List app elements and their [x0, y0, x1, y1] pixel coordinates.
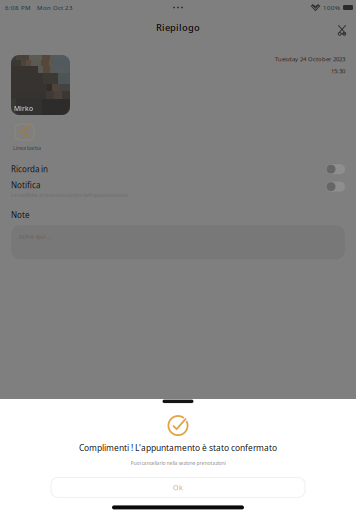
staticText: 100%	[323, 3, 340, 12]
staticText: Ok	[173, 482, 183, 492]
button[interactable]: Servizi	[334, 22, 350, 38]
staticText: Tuesday 24 October 2023	[275, 55, 345, 63]
button[interactable]: Ricorda in	[0, 162, 356, 177]
staticText: Mirko	[14, 104, 33, 113]
button[interactable]: Mirko	[11, 55, 70, 115]
staticText: Puoi cancellarlo nella sezione prenotazi…	[130, 459, 225, 466]
staticText: 6:08 PM	[5, 3, 31, 12]
staticText: scrivi qui...	[19, 232, 52, 240]
button[interactable]: Notifica	[0, 180, 356, 198]
staticText: Mon Oct 23	[31, 3, 73, 12]
staticText: Riepilogo	[156, 21, 200, 34]
button[interactable]: Ok	[51, 477, 305, 497]
staticText: Note	[11, 209, 30, 220]
button[interactable]: Attiva	[326, 182, 345, 192]
staticText: 15:30	[331, 67, 345, 75]
staticText: Complimenti ! L'appuntamento è stato con…	[79, 442, 277, 453]
staticText: Le notifiche arriveranno prima dell'appu…	[11, 191, 128, 198]
staticText: Ricorda in	[11, 164, 48, 175]
button[interactable]: Attiva	[326, 164, 345, 174]
staticText: Linea barba	[13, 144, 41, 152]
staticText: Notifica	[11, 180, 40, 190]
button[interactable]: Linea barba	[15, 124, 41, 152]
